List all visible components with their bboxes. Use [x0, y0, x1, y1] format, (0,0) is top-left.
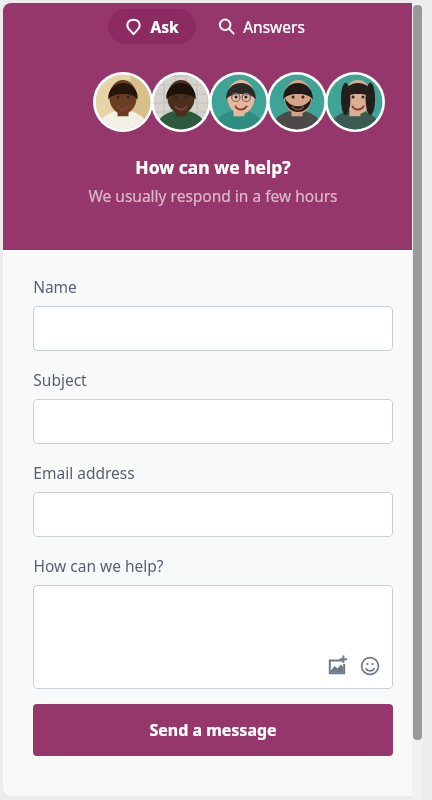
button[interactable]: [33, 492, 393, 537]
button[interactable]: Insert image: [33, 585, 393, 689]
staticText: Send a message: [149, 719, 277, 741]
staticText: Subject: [33, 369, 87, 390]
staticText: How can we help?: [33, 555, 164, 576]
staticText: Answers: [243, 16, 305, 37]
staticText: Ask: [150, 16, 179, 37]
staticText: We usually respond in a few hours: [88, 185, 338, 206]
button[interactable]: [33, 399, 393, 444]
staticText: Name: [33, 276, 77, 297]
button[interactable]: Ask: [108, 9, 196, 44]
button[interactable]: Insert emoji: [357, 653, 383, 679]
staticText: Email address: [33, 462, 135, 483]
button[interactable]: [33, 306, 393, 351]
button[interactable]: Answers: [206, 9, 317, 44]
button[interactable]: Send a message: [33, 704, 393, 756]
staticText: How can we help?: [135, 155, 291, 179]
button[interactable]: Insert image: [324, 653, 350, 679]
